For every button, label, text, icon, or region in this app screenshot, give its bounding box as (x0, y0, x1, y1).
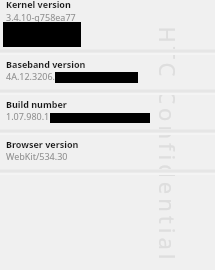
staticText: 3.4.10-g758ea77 (6, 11, 76, 23)
staticText: 1.07.980.1 (6, 110, 50, 122)
staticText: 4A.12.3206. (6, 70, 56, 82)
staticText: Browser version (6, 138, 79, 150)
button[interactable]: Browser version (0, 133, 215, 170)
staticText: WebKit/534.30 (6, 150, 68, 162)
staticText: Baseband version (6, 58, 86, 70)
staticText: Build number (6, 98, 67, 110)
button[interactable]: Kernel version (0, 0, 215, 50)
button[interactable]: Baseband version (0, 53, 215, 90)
button[interactable]: Build number (0, 93, 215, 130)
staticText: Kernel version (6, 0, 71, 10)
